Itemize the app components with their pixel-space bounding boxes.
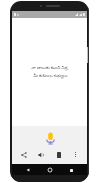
button[interactable]: Home (45, 165, 55, 175)
button[interactable]: Share (18, 149, 29, 160)
button[interactable]: Volume (35, 149, 46, 160)
button[interactable]: Recent apps (66, 165, 76, 175)
staticText: మీ కుటుంబ సభ్యులు (33, 73, 68, 80)
button[interactable]: Back (23, 165, 33, 175)
button[interactable]: Stop (53, 149, 64, 160)
button[interactable]: Microphone (43, 130, 57, 146)
button[interactable]: More options (70, 149, 81, 160)
staticText: నా బాబుకు మంచి నిద్ర, (31, 65, 69, 72)
